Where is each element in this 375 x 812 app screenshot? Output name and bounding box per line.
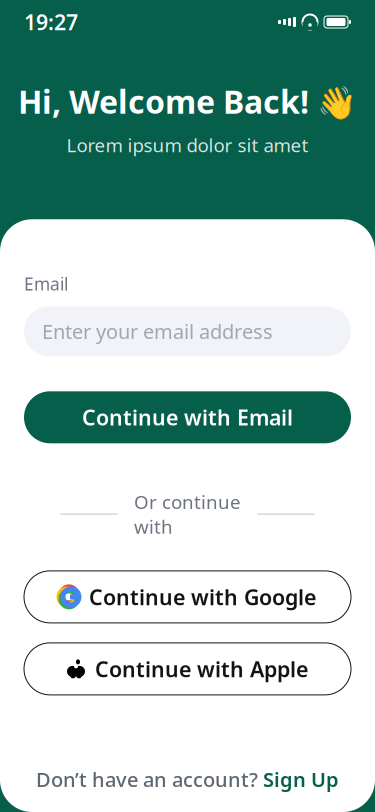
staticText: Don’t have an account?	[36, 766, 258, 792]
button[interactable]: Continue with Google	[24, 571, 351, 623]
staticText: Continue with Google	[89, 583, 316, 611]
staticText: Sign Up	[263, 766, 339, 792]
button[interactable]: Enter your email address	[24, 306, 351, 356]
staticText: 19:27	[24, 8, 78, 36]
staticText: Email	[24, 272, 68, 295]
staticText: Lorem ipsum dolor sit amet	[66, 132, 308, 157]
staticText: Continue with Apple	[95, 655, 308, 683]
button[interactable]: Don’t have an account?	[24, 760, 351, 798]
staticText: Hi, Welcome Back! 👋	[18, 80, 357, 122]
button[interactable]: Continue with Email	[24, 391, 351, 443]
staticText: Enter your email address	[42, 318, 273, 345]
button[interactable]: Continue with Apple	[24, 643, 351, 695]
staticText: Continue with Email	[82, 403, 293, 431]
staticText: Or continue with	[134, 489, 241, 539]
